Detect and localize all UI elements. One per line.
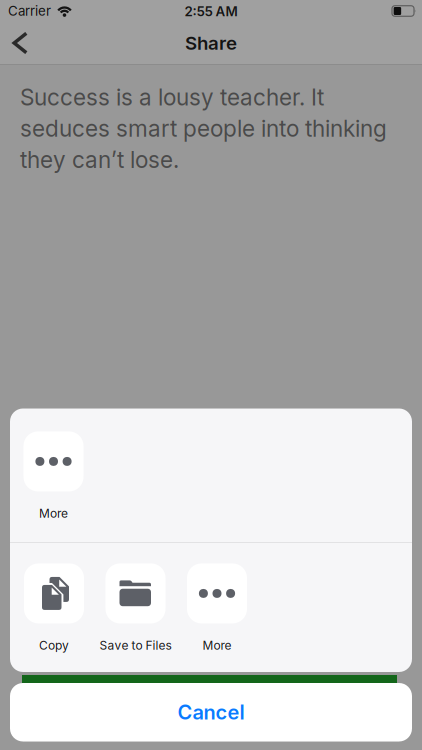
button[interactable] bbox=[0, 31, 29, 54]
button[interactable]: Cancel bbox=[10, 683, 412, 741]
button[interactable]: More bbox=[3, 431, 103, 521]
staticText: 2:55 AM bbox=[184, 4, 237, 19]
staticText: More bbox=[202, 638, 231, 653]
staticText: More bbox=[39, 506, 68, 521]
button[interactable]: More bbox=[167, 563, 267, 653]
staticText: Share bbox=[185, 32, 237, 54]
staticText: Success is a lousy teacher. It seduces s… bbox=[20, 84, 387, 173]
button[interactable]: Copy bbox=[4, 563, 104, 653]
staticText: Copy bbox=[39, 638, 69, 653]
button[interactable]: Save to Files bbox=[85, 563, 185, 653]
staticText: Cancel bbox=[177, 700, 244, 724]
staticText: Save to Files bbox=[99, 638, 171, 653]
staticText: Carrier bbox=[8, 3, 51, 19]
